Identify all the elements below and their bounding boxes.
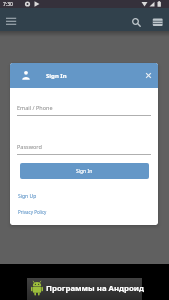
button[interactable]: [150, 15, 166, 30]
staticText: Sign In: [46, 72, 67, 80]
staticText: Password: [17, 143, 42, 150]
staticText: Privacy Policy: [18, 209, 47, 215]
button[interactable]: Sign In: [20, 163, 149, 179]
button[interactable]: [3, 15, 21, 29]
button[interactable]: Password: [17, 132, 151, 162]
staticText: Sign Up: [18, 193, 37, 200]
button[interactable]: [142, 69, 155, 82]
staticText: Sign In: [76, 168, 93, 175]
staticText: Программы на Андроид: [46, 283, 145, 294]
button[interactable]: Email / Phone: [17, 93, 151, 123]
staticText: Email / Phone: [17, 104, 53, 111]
button[interactable]: Sign Up: [18, 191, 48, 203]
button[interactable]: Privacy Policy: [18, 207, 58, 218]
button[interactable]: Программы на Андроид: [27, 278, 142, 300]
staticText: 7:30: [3, 1, 13, 8]
button[interactable]: [129, 15, 144, 30]
